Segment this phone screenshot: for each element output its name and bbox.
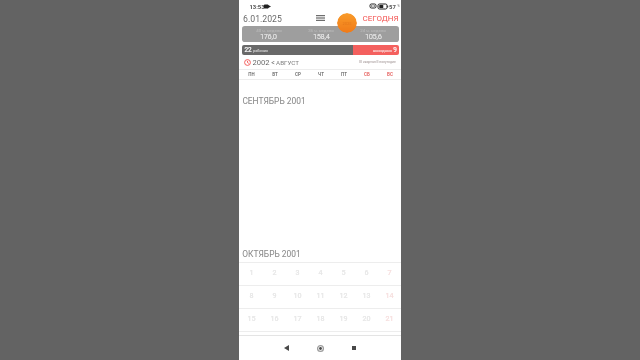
staticText: 10 [293, 291, 302, 299]
staticText: АВГУСТ [276, 59, 299, 66]
staticText: 13 [362, 291, 371, 299]
staticText: СЕГОДНЯ [362, 14, 399, 23]
staticText: 40 ч. неделя [256, 28, 282, 33]
button[interactable]: Recents [344, 336, 364, 360]
staticText: 9 [272, 291, 277, 299]
staticText: выходных [373, 48, 392, 53]
button[interactable]: 18 [309, 309, 332, 331]
button[interactable]: Today [337, 13, 357, 33]
button[interactable]: 6.01.2025 [243, 14, 282, 24]
staticText: 13:53 [249, 4, 265, 11]
staticText: 6 [364, 268, 369, 276]
staticText: < [271, 59, 275, 67]
staticText: 12 [339, 291, 348, 299]
button[interactable]: 21 [378, 309, 401, 331]
button[interactable]: 40 ч. неделя [242, 26, 295, 42]
staticText: 8 [249, 291, 254, 299]
button[interactable]: 36 ч. неделя [295, 26, 347, 42]
staticText: % [397, 4, 400, 8]
button[interactable]: ПТ [332, 70, 355, 79]
staticText: 176,0 [260, 33, 277, 41]
staticText: СБ [364, 72, 370, 77]
staticText: ПТ [341, 72, 347, 77]
button[interactable]: СБ [355, 70, 378, 79]
staticText: СР [295, 72, 301, 77]
staticText: ЧТ [318, 72, 324, 77]
staticText: 20 [362, 314, 371, 322]
staticText: 14 [385, 291, 394, 299]
staticText: 36 ч. неделя [308, 28, 334, 33]
staticText: 158,4 [313, 33, 330, 41]
button[interactable]: 8 [239, 286, 263, 308]
staticText: 3 [295, 268, 300, 276]
button[interactable]: 11 [309, 286, 332, 308]
staticText: 11 [316, 291, 325, 299]
staticText: 16 [270, 314, 279, 322]
staticText: 4 [318, 268, 323, 276]
staticText: 15 [247, 314, 256, 322]
button[interactable]: 14 [378, 286, 401, 308]
button[interactable]: 7 [378, 263, 401, 285]
staticText: 2002 [252, 58, 270, 67]
staticText: 5 [341, 268, 346, 276]
staticText: 19 [339, 314, 348, 322]
staticText: 6.01.2025 [243, 14, 282, 24]
staticText: 1 [249, 268, 254, 276]
staticText: ПН [248, 72, 255, 77]
button[interactable]: 17 [286, 309, 309, 331]
button[interactable]: ПН [239, 70, 263, 79]
button[interactable]: Back [276, 336, 296, 360]
staticText: 22 [244, 46, 252, 54]
button[interactable]: ВТ [263, 70, 286, 79]
button[interactable]: 15 [239, 309, 263, 331]
staticText: 57 [389, 4, 396, 11]
staticText: ОКТЯБРЬ 2001 [242, 249, 301, 259]
button[interactable]: выходных [353, 45, 397, 55]
staticText: рабочих [253, 48, 268, 53]
staticText: 9 [393, 46, 397, 54]
staticText: 18 [316, 314, 325, 322]
button[interactable]: ЧТ [309, 70, 332, 79]
staticText: 21 [385, 314, 394, 322]
button[interactable]: СР [286, 70, 309, 79]
button[interactable]: Menu [313, 11, 327, 25]
staticText: 105,6 [365, 33, 382, 41]
button[interactable]: 16 [263, 309, 286, 331]
button[interactable]: 10 [286, 286, 309, 308]
staticText: СЕНТЯБРЬ 2001 [242, 96, 306, 106]
staticText: 24 ч. неделя [360, 28, 386, 33]
staticText: ВТ [272, 72, 278, 77]
staticText: 7 [387, 268, 392, 276]
button[interactable]: 12 [332, 286, 355, 308]
button[interactable]: 24 ч. неделя [347, 26, 399, 42]
staticText: 2025 [342, 21, 352, 26]
staticText: 2 [272, 268, 277, 276]
button[interactable]: СЕГОДНЯ [362, 14, 399, 23]
button[interactable]: 22 [244, 45, 353, 55]
staticText: III квартал II полугодие [359, 60, 396, 64]
button[interactable]: ВС [378, 70, 401, 79]
button[interactable]: 13 [355, 286, 378, 308]
staticText: ВС [387, 72, 393, 77]
staticText: 17 [293, 314, 302, 322]
button[interactable]: 20 [355, 309, 378, 331]
button[interactable]: 6 [355, 263, 378, 285]
button[interactable]: 19 [332, 309, 355, 331]
button[interactable]: 5 [332, 263, 355, 285]
button[interactable]: Home [310, 336, 330, 360]
